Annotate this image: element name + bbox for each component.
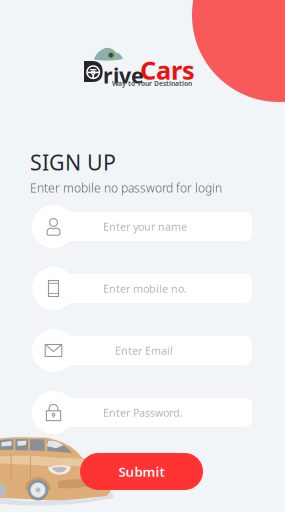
staticText: Enter mobile no. <box>103 281 187 296</box>
staticText: rive <box>103 61 144 89</box>
button[interactable]: Enter Email <box>32 329 252 372</box>
staticText: Enter your name <box>103 219 187 234</box>
button[interactable]: Enter your name <box>32 205 252 248</box>
staticText: Cars <box>140 53 195 87</box>
staticText: SIGN UP <box>30 148 116 176</box>
button[interactable]: Submit <box>80 453 203 490</box>
staticText: Enter Email <box>115 343 173 358</box>
staticText: Enter mobile no password for login <box>30 180 222 196</box>
staticText: Submit <box>118 463 164 480</box>
staticText: Enter Password. <box>103 405 183 420</box>
button[interactable]: Enter mobile no. <box>32 267 252 310</box>
staticText: Way to Your Destination <box>112 79 192 88</box>
button[interactable]: Enter Password. <box>32 391 252 434</box>
